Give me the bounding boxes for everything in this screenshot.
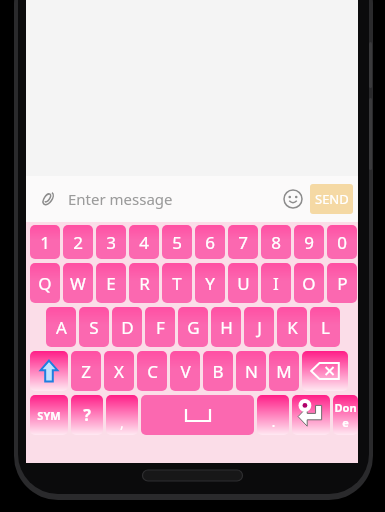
staticText: SEND bbox=[315, 190, 349, 208]
staticText: A bbox=[56, 316, 67, 339]
staticText: Done bbox=[333, 400, 358, 430]
button[interactable]: E bbox=[96, 263, 126, 303]
button[interactable]: N bbox=[236, 351, 266, 391]
staticText: W bbox=[70, 272, 86, 295]
button[interactable]: L bbox=[310, 307, 340, 347]
staticText: , bbox=[120, 413, 124, 432]
button[interactable]: Done bbox=[333, 395, 358, 435]
button[interactable]: H bbox=[211, 307, 241, 347]
button[interactable]: A bbox=[46, 307, 76, 347]
button[interactable]: B bbox=[203, 351, 233, 391]
button[interactable]: Backspace bbox=[302, 351, 348, 391]
staticText: 7 bbox=[238, 231, 248, 254]
staticText: C bbox=[147, 360, 158, 383]
button[interactable]: P bbox=[327, 263, 357, 303]
staticText: G bbox=[187, 316, 200, 339]
button[interactable]: Z bbox=[71, 351, 101, 391]
button[interactable]: F bbox=[145, 307, 175, 347]
staticText: Z bbox=[81, 360, 91, 383]
staticText: D bbox=[121, 316, 134, 339]
button[interactable]: Space bbox=[141, 395, 254, 435]
button[interactable]: Enter and settings bbox=[292, 395, 330, 435]
button[interactable]: Emoji bbox=[278, 184, 308, 214]
staticText: 6 bbox=[205, 231, 215, 254]
staticText: 8 bbox=[271, 231, 281, 254]
staticText: Q bbox=[38, 272, 52, 295]
staticText: K bbox=[287, 316, 298, 339]
button[interactable]: 2 bbox=[63, 225, 93, 259]
staticText: Enter message bbox=[68, 189, 173, 209]
button[interactable]: J bbox=[244, 307, 274, 347]
button[interactable]: W bbox=[63, 263, 93, 303]
button[interactable]: U bbox=[228, 263, 258, 303]
staticText: J bbox=[257, 316, 262, 339]
button[interactable]: 1 bbox=[30, 225, 60, 259]
staticText: N bbox=[245, 360, 258, 383]
button[interactable]: SEND bbox=[310, 184, 353, 214]
staticText: F bbox=[156, 316, 165, 339]
button[interactable]: 8 bbox=[261, 225, 291, 259]
button[interactable]: R bbox=[129, 263, 159, 303]
staticText: P bbox=[337, 272, 348, 295]
button[interactable]: , bbox=[106, 395, 138, 435]
button[interactable]: SYM bbox=[30, 395, 68, 435]
button[interactable]: D bbox=[112, 307, 142, 347]
staticText: R bbox=[139, 272, 150, 295]
button[interactable]: 3 bbox=[96, 225, 126, 259]
staticText: B bbox=[212, 360, 224, 383]
staticText: V bbox=[180, 360, 191, 383]
button[interactable]: ? bbox=[71, 395, 103, 435]
button[interactable]: 5 bbox=[162, 225, 192, 259]
staticText: ? bbox=[83, 404, 91, 426]
button[interactable]: K bbox=[277, 307, 307, 347]
button[interactable]: Q bbox=[30, 263, 60, 303]
staticText: 2 bbox=[73, 231, 83, 254]
button[interactable]: G bbox=[178, 307, 208, 347]
button[interactable]: O bbox=[294, 263, 324, 303]
staticText: E bbox=[106, 272, 116, 295]
staticText: 5 bbox=[172, 231, 182, 254]
button[interactable]: X bbox=[104, 351, 134, 391]
button[interactable]: Y bbox=[195, 263, 225, 303]
button[interactable]: V bbox=[170, 351, 200, 391]
button[interactable]: 7 bbox=[228, 225, 258, 259]
button[interactable]: I bbox=[261, 263, 291, 303]
staticText: 3 bbox=[106, 231, 116, 254]
button[interactable]: 0 bbox=[327, 225, 357, 259]
button[interactable]: C bbox=[137, 351, 167, 391]
staticText: T bbox=[172, 272, 182, 295]
staticText: . bbox=[271, 411, 276, 431]
button[interactable]: 6 bbox=[195, 225, 225, 259]
button[interactable]: . bbox=[257, 395, 289, 435]
staticText: O bbox=[302, 272, 316, 295]
button[interactable]: 9 bbox=[294, 225, 324, 259]
button[interactable]: Attach bbox=[34, 185, 62, 213]
staticText: I bbox=[273, 272, 279, 295]
staticText: U bbox=[237, 272, 250, 295]
button[interactable]: Enter message bbox=[68, 189, 278, 209]
staticText: S bbox=[89, 316, 99, 339]
button[interactable]: 4 bbox=[129, 225, 159, 259]
button[interactable]: T bbox=[162, 263, 192, 303]
button[interactable]: S bbox=[79, 307, 109, 347]
staticText: SYM bbox=[37, 408, 61, 423]
button[interactable]: M bbox=[269, 351, 299, 391]
staticText: H bbox=[220, 316, 233, 339]
staticText: 4 bbox=[139, 231, 149, 254]
staticText: 9 bbox=[304, 231, 314, 254]
staticText: M bbox=[276, 360, 292, 383]
staticText: 1 bbox=[40, 231, 50, 254]
button[interactable]: Shift bbox=[30, 351, 68, 391]
staticText: X bbox=[114, 360, 124, 383]
staticText: L bbox=[321, 316, 330, 339]
staticText: 0 bbox=[337, 231, 347, 254]
staticText: Y bbox=[205, 272, 215, 295]
